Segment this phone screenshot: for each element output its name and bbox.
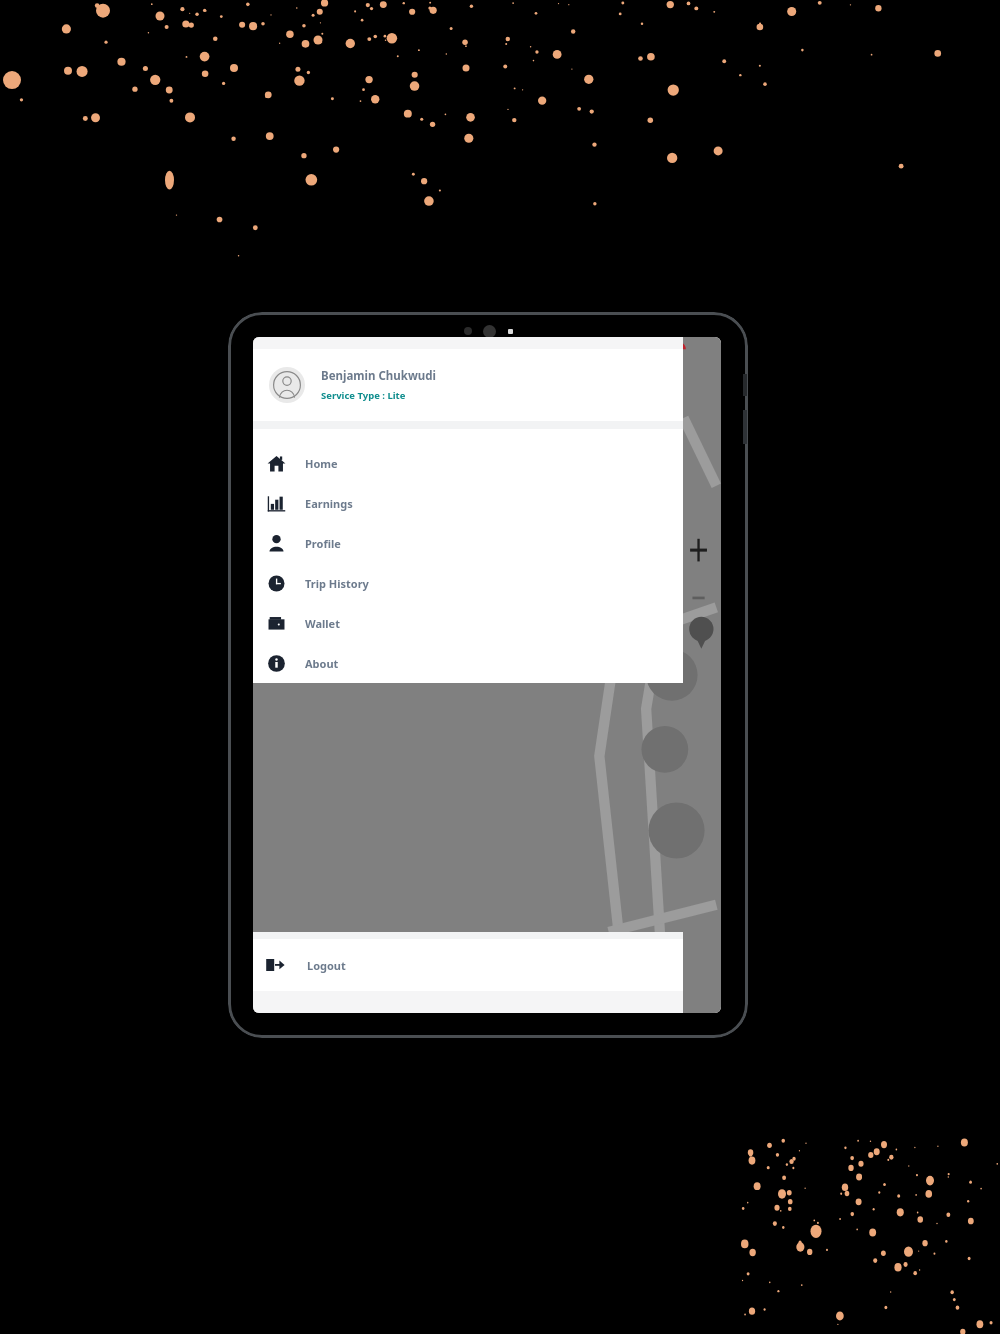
button[interactable]: Logout [253,939,683,991]
staticText: Wallet [305,616,340,631]
staticText: Home [305,456,338,471]
button[interactable]: Earnings [253,483,683,523]
button[interactable]: About [253,643,683,683]
staticText: Logout [307,958,346,973]
button[interactable]: Wallet [253,603,683,643]
staticText: About [305,656,339,671]
staticText: Earnings [305,496,353,511]
staticText: Service Type : Lite [321,389,406,402]
button[interactable]: Benjamin Chukwudi [253,349,683,421]
button[interactable]: Home [253,443,683,483]
button[interactable]: Profile [253,523,683,563]
staticText: Trip History [305,576,369,591]
staticText: Profile [305,536,341,551]
button[interactable]: Trip History [253,563,683,603]
staticText: Benjamin Chukwudi [321,368,436,384]
